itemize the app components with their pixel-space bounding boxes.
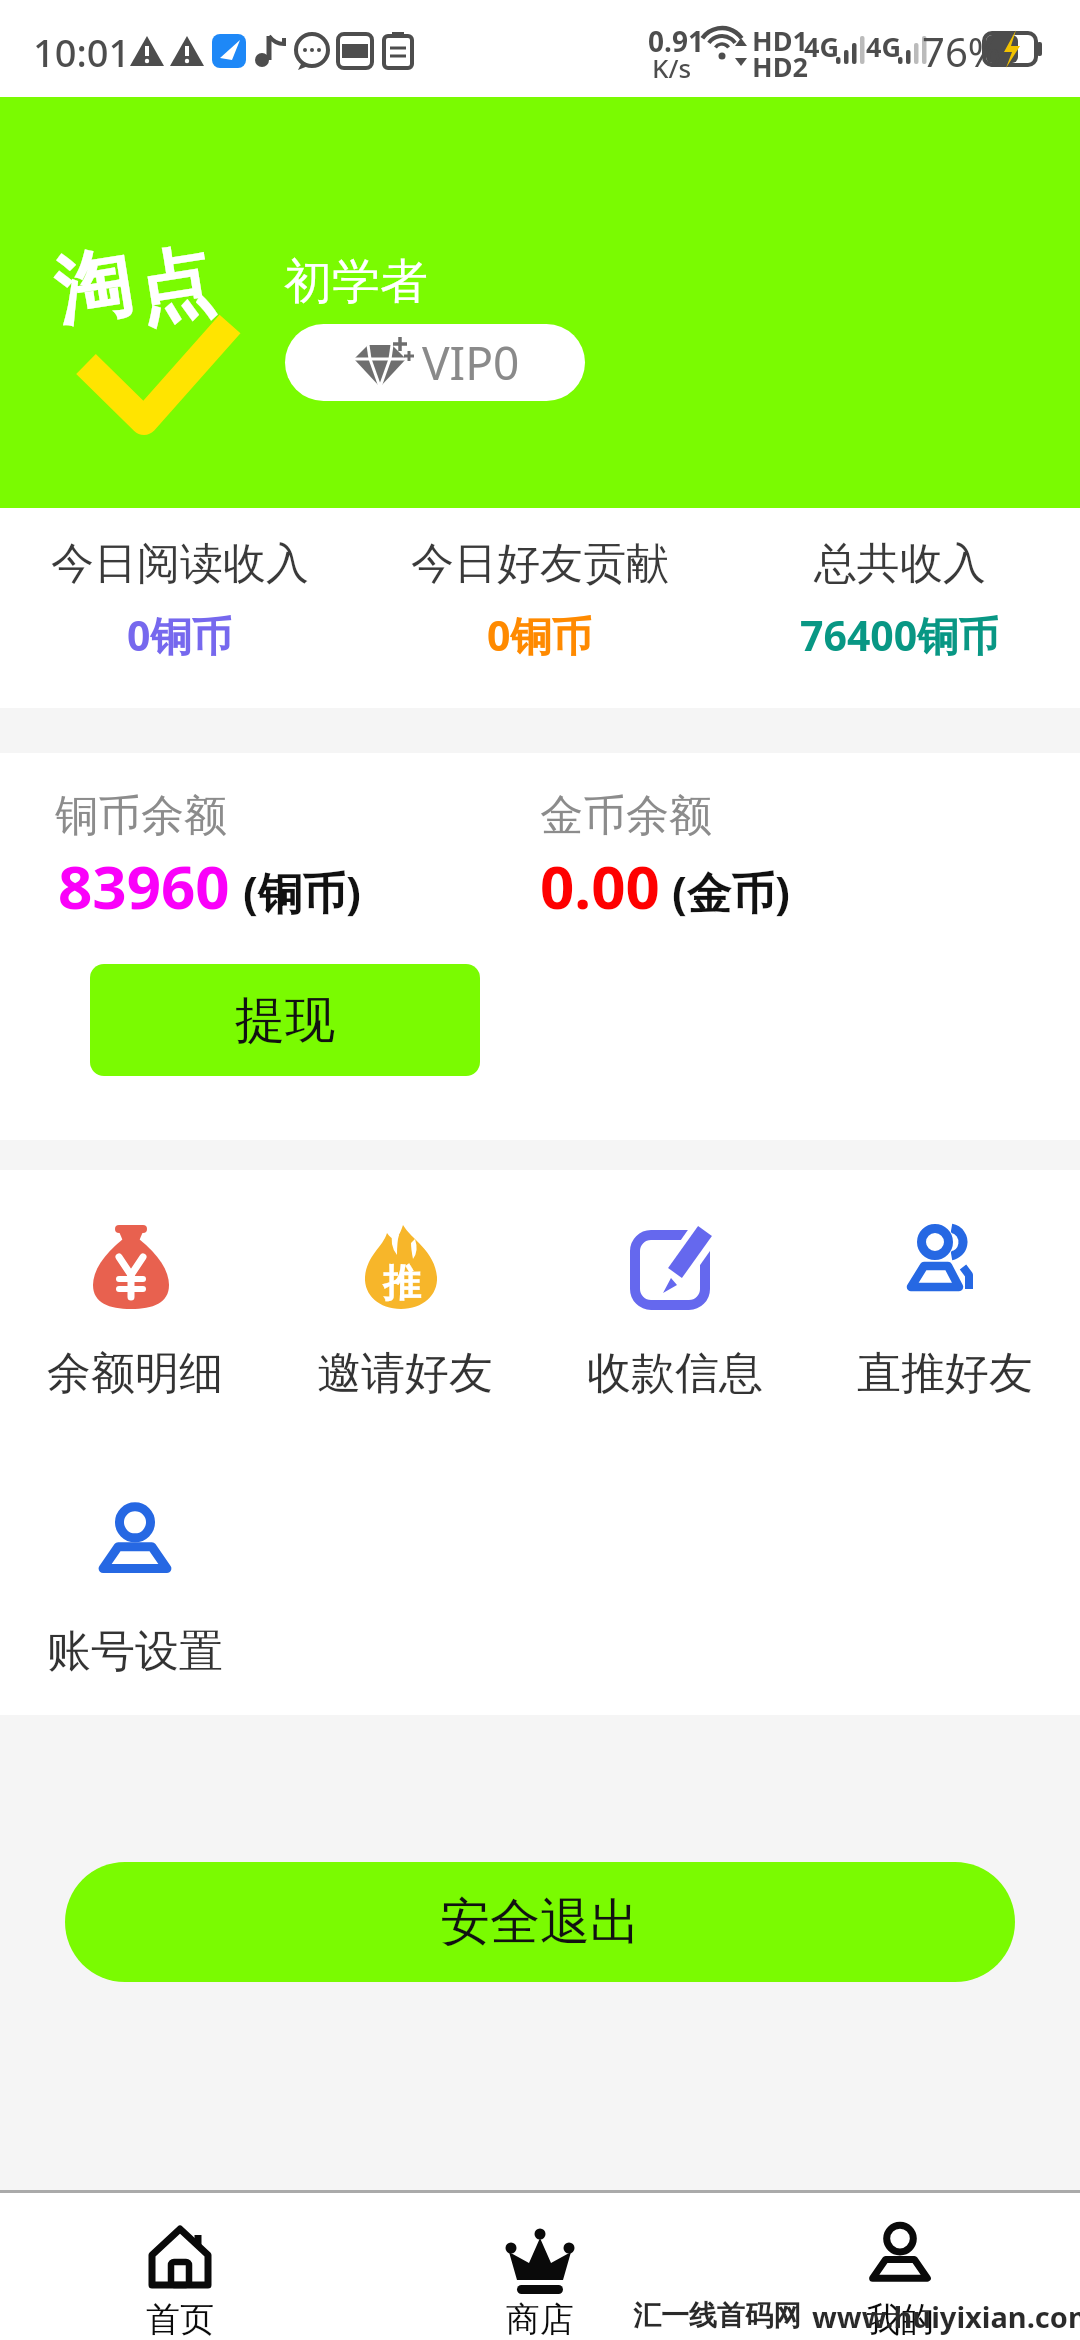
staticText: 83960: [58, 845, 230, 927]
staticText: 提现: [235, 989, 335, 1052]
button[interactable]: 收款信息: [540, 1225, 810, 1401]
staticText: www.huiyixian.com: [812, 2297, 1080, 2336]
staticText: 首页: [146, 2298, 214, 2340]
staticText: 账号设置: [47, 1624, 223, 1679]
staticText: 铜币余额: [55, 789, 227, 843]
button[interactable]: 安全退出: [65, 1862, 1015, 1982]
staticText: 0铜币: [487, 607, 593, 663]
button[interactable]: 账号设置: [0, 1503, 270, 1679]
button[interactable]: 推: [270, 1225, 540, 1401]
staticText: 邀请好友: [317, 1346, 493, 1401]
staticText: K/s: [652, 50, 692, 85]
staticText: 安全退出: [440, 1891, 640, 1954]
staticText: 淘: [48, 235, 138, 341]
button[interactable]: 首页: [0, 2222, 360, 2340]
staticText: 收款信息: [587, 1346, 763, 1401]
staticText: 我的: [866, 2298, 934, 2340]
staticText: HD2: [752, 48, 808, 85]
button[interactable]: 提现: [90, 964, 480, 1076]
staticText: 推: [383, 1259, 421, 1307]
staticText: (铜币): [243, 862, 361, 922]
staticText: VIP0: [422, 331, 520, 394]
button[interactable]: 余额明细: [0, 1225, 270, 1401]
staticText: 今日阅读收入: [51, 537, 309, 591]
staticText: 直推好友: [857, 1346, 1033, 1401]
staticText: 0铜币: [127, 607, 233, 663]
staticText: 0.00: [540, 845, 660, 927]
button[interactable]: 商店: [360, 2222, 720, 2340]
button[interactable]: 我的: [720, 2222, 1080, 2340]
staticText: 10:01: [33, 26, 131, 78]
staticText: 点: [130, 234, 220, 340]
button[interactable]: 直推好友: [810, 1225, 1080, 1401]
staticText: 0.91: [648, 22, 704, 60]
staticText: 金币余额: [540, 789, 712, 843]
staticText: 商店: [506, 2298, 574, 2340]
staticText: (金币): [672, 862, 790, 922]
staticText: 76%: [922, 24, 1001, 78]
staticText: 今日好友贡献: [411, 537, 669, 591]
staticText: 4G: [866, 28, 901, 65]
staticText: 初学者: [284, 252, 428, 312]
staticText: HD1: [752, 22, 808, 59]
staticText: 汇一线首码网: [633, 2298, 801, 2333]
staticText: 总共收入: [814, 537, 986, 591]
button[interactable]: VIP0: [285, 324, 585, 401]
staticText: 余额明细: [47, 1346, 223, 1401]
staticText: 4G: [804, 28, 839, 65]
staticText: 76400铜币: [800, 607, 1000, 663]
